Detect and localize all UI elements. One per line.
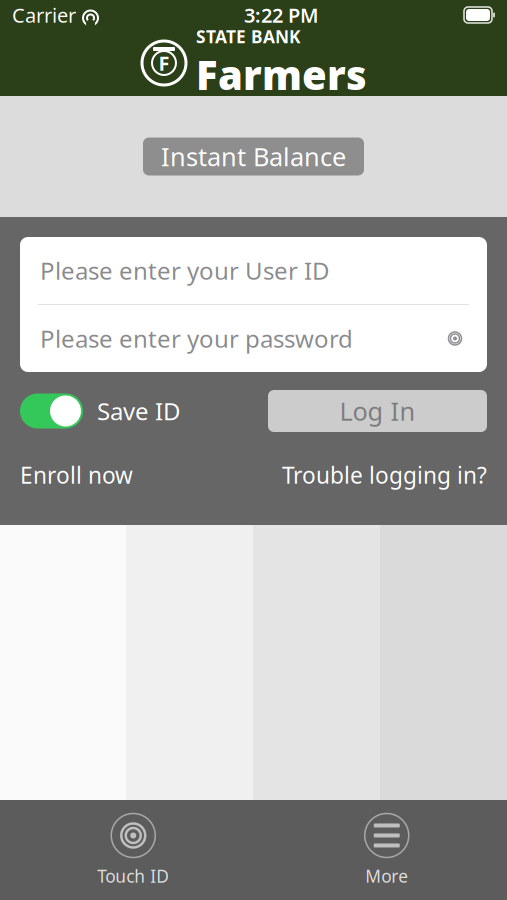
- button[interactable]: Touch ID: [97, 812, 169, 887]
- staticText: Enroll now: [20, 460, 133, 490]
- button[interactable]: Trouble logging in?: [282, 460, 487, 490]
- staticText: Touch ID: [97, 864, 169, 887]
- staticText: STATE BANK: [196, 25, 301, 48]
- staticText: Carrier: [12, 2, 76, 28]
- button[interactable]: Please enter your password: [20, 305, 487, 372]
- staticText: Save ID: [97, 395, 181, 427]
- staticText: Trouble logging in?: [282, 460, 487, 490]
- button[interactable]: Save ID: [20, 393, 181, 428]
- staticText: F: [158, 50, 169, 76]
- staticText: Instant Balance: [161, 140, 346, 173]
- staticText: Log In: [339, 394, 415, 428]
- staticText: 3:22 PM: [244, 2, 319, 28]
- button[interactable]: More: [364, 812, 410, 887]
- staticText: Farmers: [196, 48, 367, 101]
- button[interactable]: Instant Balance: [143, 137, 364, 175]
- staticText: Please enter your password: [40, 323, 353, 354]
- staticText: More: [365, 864, 408, 887]
- button[interactable]: Log In: [268, 390, 487, 432]
- button[interactable]: Enroll now: [20, 460, 133, 490]
- staticText: Please enter your User ID: [40, 255, 330, 286]
- button[interactable]: Please enter your User ID: [20, 237, 487, 304]
